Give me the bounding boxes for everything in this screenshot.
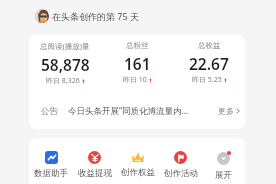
staticText: 数据助手 [34, 168, 68, 179]
button[interactable]: 总收益 [173, 41, 245, 85]
staticText: 在头条创作的第 75 天 [52, 10, 139, 22]
staticText: 昨日 5.25 [192, 75, 222, 85]
staticText: 收益提现 [78, 168, 112, 179]
staticText: 161 [124, 53, 151, 74]
staticText: 创作权益 [121, 167, 155, 178]
staticText: 总阅读(播放)量 [40, 41, 90, 51]
staticText: 总粉丝 [126, 41, 149, 50]
staticText: 更多 [218, 106, 234, 116]
staticText: 昨日 10 [123, 75, 147, 85]
button[interactable]: 收益提现 [73, 151, 116, 179]
button[interactable]: 创作权益 [116, 151, 159, 178]
staticText: 昨日 8,326 [46, 76, 80, 86]
staticText: 22.67 [189, 53, 229, 74]
staticText: 创作活动 [164, 168, 198, 179]
button[interactable]: 公告 [29, 101, 245, 121]
button[interactable]: 展开 [202, 151, 245, 181]
staticText: 今日头条开展“同质化博流量内… [68, 105, 189, 117]
button[interactable]: 总阅读(播放)量 [29, 41, 101, 86]
button[interactable]: 总粉丝 [101, 41, 173, 85]
button[interactable]: 创作活动 [159, 151, 202, 179]
staticText: 总收益 [198, 41, 221, 50]
staticText: 58,878 [41, 54, 90, 75]
other: 展开 [217, 152, 230, 165]
staticText: 公告 [41, 106, 58, 117]
button[interactable]: 在头条创作的第 75 天 [35, 9, 139, 23]
staticText: 展开 [215, 170, 232, 181]
button[interactable]: 数据助手 [29, 151, 73, 179]
